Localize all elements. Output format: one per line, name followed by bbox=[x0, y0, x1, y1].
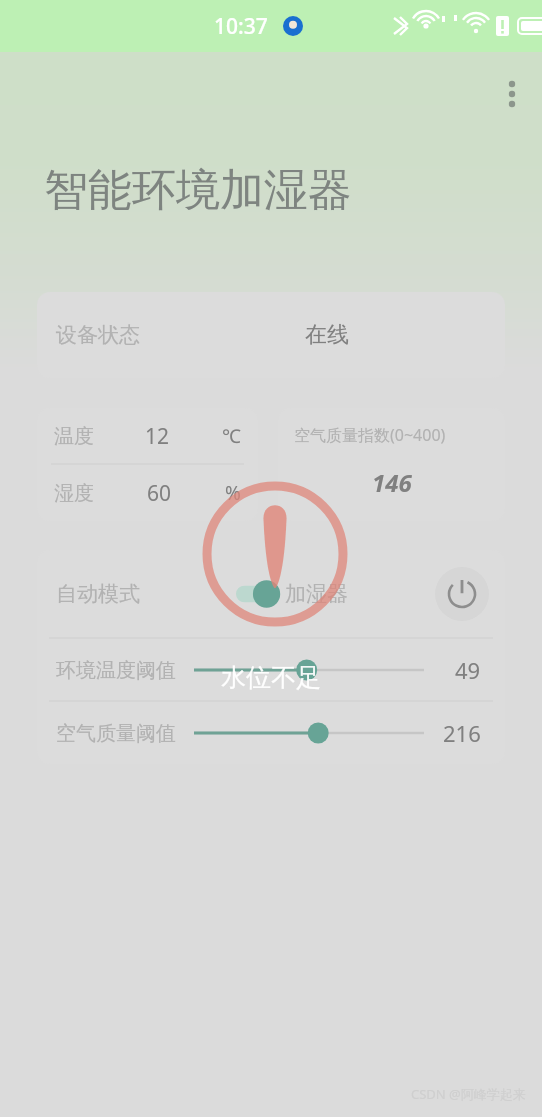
staticText: ℃ bbox=[222, 423, 241, 449]
staticText: 湿度 bbox=[54, 481, 94, 506]
button[interactable]: 自动模式 bbox=[37, 550, 505, 638]
staticText: 空气质量指数(0~400) bbox=[294, 424, 446, 446]
staticText: 加湿器 bbox=[285, 581, 348, 607]
staticText: 智能环境加湿器 bbox=[44, 163, 352, 218]
button[interactable]: 空气质量阈值 bbox=[37, 702, 505, 764]
button[interactable]: 空气质量指数(0~400) bbox=[278, 408, 505, 521]
staticText: CSDN @阿峰学起来 bbox=[411, 1085, 526, 1103]
staticText: 空气质量阈值 bbox=[56, 721, 176, 746]
button[interactable]: Power bbox=[435, 567, 489, 621]
staticText: % bbox=[225, 480, 241, 506]
staticText: 146 bbox=[372, 466, 412, 499]
staticText: 设备状态 bbox=[56, 322, 140, 348]
staticText: 216 bbox=[443, 718, 481, 748]
staticText: 12 bbox=[145, 422, 170, 451]
other: 环境温度阈值 slider bbox=[194, 655, 424, 685]
button[interactable]: 设备状态 bbox=[37, 292, 505, 378]
button[interactable]: 环境温度阈值 bbox=[37, 639, 505, 701]
staticText: 温度 bbox=[54, 424, 94, 449]
staticText: 在线 bbox=[305, 321, 349, 349]
staticText: 自动模式 bbox=[56, 581, 140, 607]
staticText: 60 bbox=[147, 479, 172, 508]
button[interactable]: More options bbox=[492, 74, 532, 114]
staticText: 10:37 bbox=[214, 12, 268, 41]
staticText: 水位不足 bbox=[221, 662, 321, 693]
other: 空气质量阈值 slider bbox=[194, 718, 424, 748]
button[interactable]: 温度 bbox=[37, 408, 258, 521]
button[interactable]: Auto mode switch bbox=[236, 583, 278, 605]
staticText: 环境温度阈值 bbox=[56, 658, 176, 683]
staticText: 49 bbox=[455, 655, 481, 685]
